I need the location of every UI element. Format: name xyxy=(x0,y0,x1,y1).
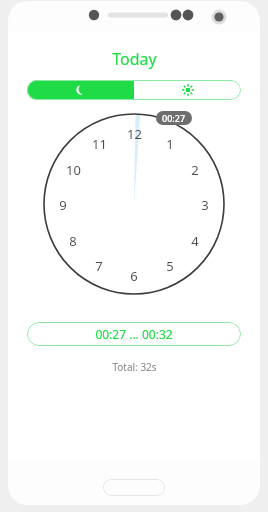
staticText: Today xyxy=(112,48,157,70)
staticText: 3 xyxy=(201,196,209,212)
staticText: 00:27 xyxy=(162,112,186,124)
button[interactable]: 00:27 ... 00:32 xyxy=(27,322,241,346)
staticText: 12 xyxy=(127,125,142,141)
staticText: 1 xyxy=(166,135,174,151)
staticText: 00:27 ... 00:32 xyxy=(95,326,173,342)
staticText: 6 xyxy=(130,267,138,283)
button[interactable]: Home xyxy=(103,479,165,496)
staticText: Total: 32s xyxy=(112,360,157,374)
staticText: 4 xyxy=(191,232,199,248)
staticText: 9 xyxy=(59,196,67,212)
staticText: 2 xyxy=(191,161,199,177)
button[interactable]: 00:27 xyxy=(156,111,192,125)
staticText: 8 xyxy=(69,232,77,248)
staticText: 5 xyxy=(166,257,174,273)
button[interactable]: Day xyxy=(134,80,241,100)
button[interactable]: Night xyxy=(27,80,134,100)
staticText: 11 xyxy=(92,135,107,151)
staticText: 7 xyxy=(95,257,103,273)
staticText: 10 xyxy=(66,161,81,177)
